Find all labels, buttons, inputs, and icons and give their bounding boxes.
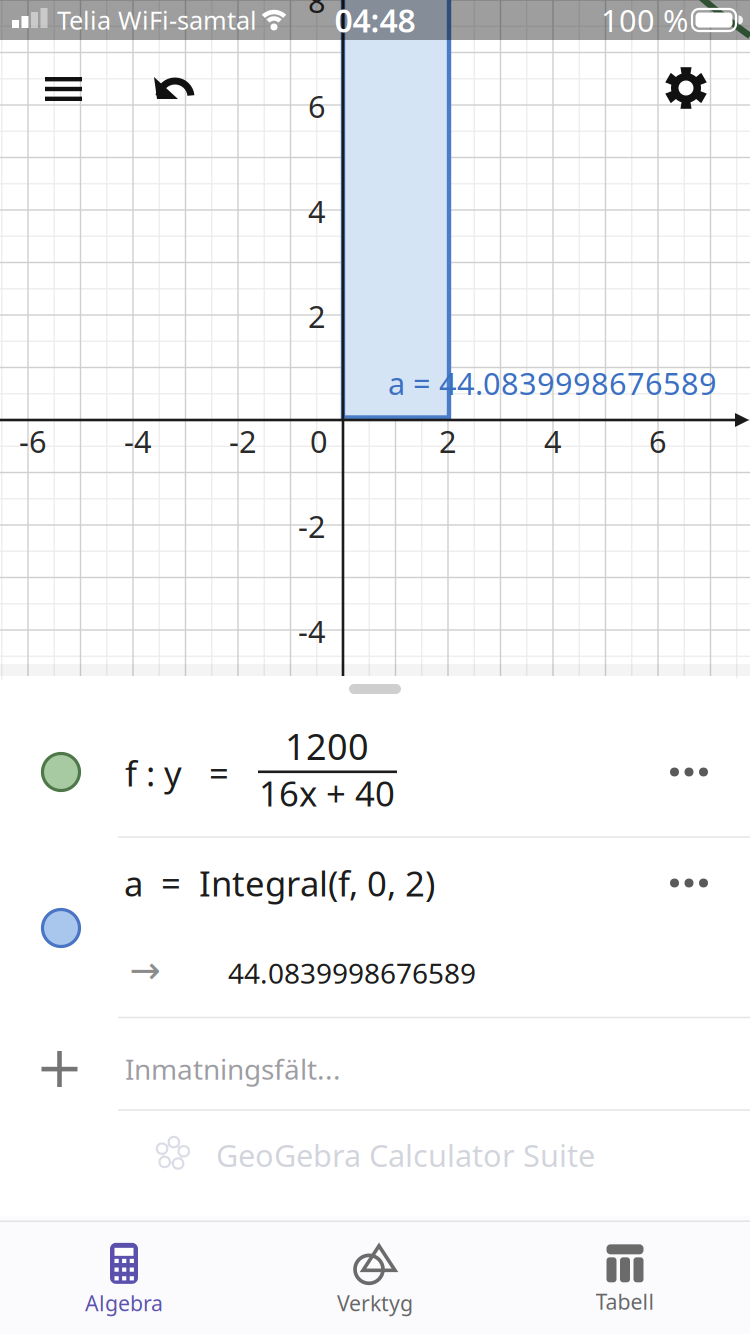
staticText: 8 [308,0,326,21]
staticText: 04:48 [334,0,415,41]
staticText: Verktyg [337,1289,413,1317]
button[interactable]: Menu [31,63,96,115]
staticText: 6 [308,86,326,126]
staticText: -4 [124,421,152,461]
button[interactable]: More options [658,866,720,899]
button[interactable]: New input [29,1039,89,1099]
staticText: Telia WiFi-samtal [57,3,257,37]
staticText: f : y = [125,750,229,796]
button[interactable]: Verktyg [275,1228,475,1332]
staticText: 4 [544,421,562,461]
staticText: 100 % [601,0,688,40]
staticText: -6 [19,421,47,461]
staticText: 16x + 40 [259,770,395,816]
button[interactable]: Algebra [24,1228,224,1332]
staticText: a = 44.0839998676589 [388,363,717,403]
button[interactable]: Undo [140,63,208,115]
staticText: 0 [310,421,328,461]
staticText: Tabell [595,1287,654,1316]
button[interactable]: Toggle visibility [41,908,81,948]
staticText: a = Integral(f, 0, 2) [124,860,435,906]
button[interactable]: Toggle visibility [41,752,81,792]
staticText: GeoGebra Calculator Suite [216,1135,595,1175]
staticText: -4 [298,611,326,651]
staticText: -2 [298,506,326,546]
staticText: 2 [439,421,457,461]
staticText: 4 [308,191,326,231]
staticText: → [129,949,160,991]
staticText: 44.0839998676589 [228,954,476,992]
staticText: 6 [649,421,667,461]
button[interactable]: Inmatningsfält... [125,1037,725,1101]
staticText: -2 [229,421,257,461]
staticText: 1200 [285,722,369,770]
button[interactable]: Tabell [525,1228,725,1332]
button[interactable]: Settings [652,54,720,122]
button[interactable]: More options [658,755,720,788]
staticText: 2 [308,296,326,336]
staticText: Algebra [85,1289,163,1317]
staticText: Inmatningsfält... [125,1050,341,1088]
